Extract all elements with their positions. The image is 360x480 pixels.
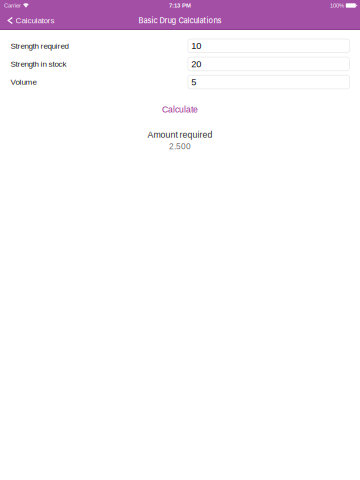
staticText: 10 [191,41,201,51]
staticText: Volume [10,77,36,86]
staticText: 20 [191,59,201,69]
staticText: Carrier [4,2,21,9]
staticText: 5 [191,77,196,87]
staticText: Basic Drug Calculations [138,16,221,25]
button[interactable]: Calculators [0,11,59,30]
staticText: Calculate [162,105,198,114]
button[interactable]: Calculate [152,102,208,117]
staticText: 100% [330,2,344,9]
staticText: Calculators [15,16,54,25]
staticText: 2.500 [169,142,191,151]
staticText: Amount required [147,130,212,140]
staticText: 7:13 PM [169,2,191,9]
staticText: Strength in stock [10,59,66,68]
staticText: Strength required [10,41,68,50]
